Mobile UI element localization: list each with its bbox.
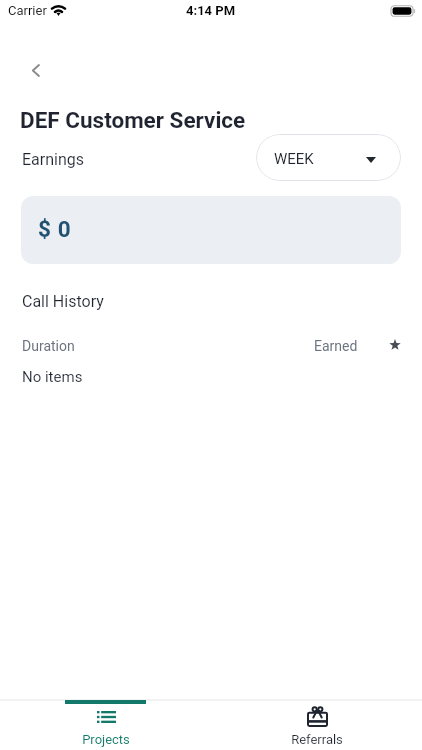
staticText: $ 0 <box>38 216 72 242</box>
button[interactable]: Sort by earned <box>383 333 407 357</box>
staticText: WEEK <box>274 150 314 168</box>
staticText: Carrier <box>8 3 47 18</box>
staticText: 4:14 PM <box>186 3 236 18</box>
staticText: Call History <box>22 292 104 311</box>
staticText: Earnings <box>22 150 85 169</box>
staticText: Earned <box>314 338 358 354</box>
staticText: DEF Customer Service <box>20 107 246 133</box>
button[interactable]: Projects <box>0 699 211 750</box>
button[interactable]: Back <box>21 57 49 84</box>
staticText: Projects <box>82 732 130 747</box>
button[interactable]: Referrals <box>211 699 422 750</box>
button[interactable]: WEEK <box>256 134 401 181</box>
staticText: Referrals <box>291 732 343 747</box>
staticText: Duration <box>22 338 75 354</box>
staticText: No items <box>22 368 83 386</box>
